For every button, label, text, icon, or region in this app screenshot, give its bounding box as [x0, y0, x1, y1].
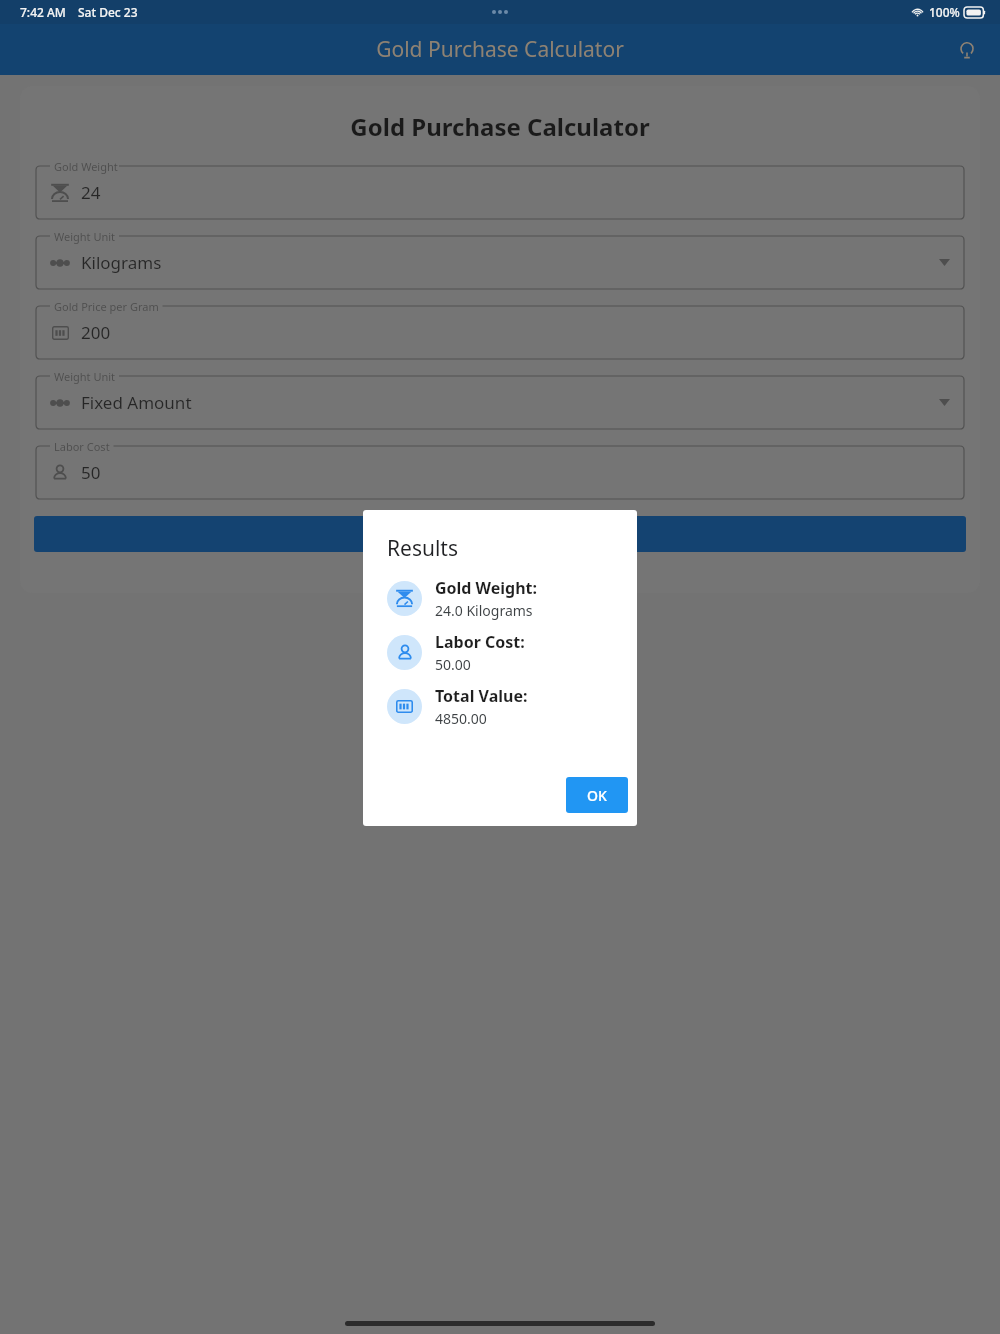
staticText: 50 [81, 461, 101, 484]
staticText: Labor Cost: [435, 631, 525, 653]
button[interactable] [34, 516, 966, 552]
staticText: 100% [929, 4, 960, 20]
staticText: Weight Unit [54, 229, 116, 244]
staticText: Gold Purchase Calculator [20, 110, 980, 143]
staticText: Labor Cost [54, 439, 110, 454]
staticText: 24 [81, 181, 101, 204]
button[interactable]: Tips [946, 29, 988, 71]
staticText: 50.00 [435, 655, 471, 674]
staticText: Gold Weight: [435, 577, 538, 599]
button[interactable]: Gold Weight [36, 159, 964, 219]
staticText: Kilograms [81, 251, 162, 274]
staticText: Gold Purchase Calculator [376, 35, 624, 64]
staticText: 4850.00 [435, 709, 487, 728]
staticText: Results [387, 534, 459, 563]
staticText: 24.0 Kilograms [435, 601, 533, 620]
staticText: Total Value: [435, 685, 528, 707]
staticText: OK [587, 786, 607, 805]
button[interactable]: Weight Unit [36, 369, 964, 429]
button[interactable]: Gold Price per Gram [36, 299, 964, 359]
button[interactable]: Weight Unit [36, 229, 964, 289]
staticText: 200 [81, 321, 111, 344]
staticText: Weight Unit [54, 369, 116, 384]
button[interactable]: Labor Cost [36, 439, 964, 499]
staticText: 7:42 AM [20, 4, 66, 20]
button[interactable]: OK [566, 777, 628, 813]
staticText: Sat Dec 23 [78, 4, 138, 20]
staticText: Gold Weight [54, 159, 118, 174]
staticText: Gold Price per Gram [54, 299, 159, 314]
staticText: Fixed Amount [81, 391, 192, 414]
